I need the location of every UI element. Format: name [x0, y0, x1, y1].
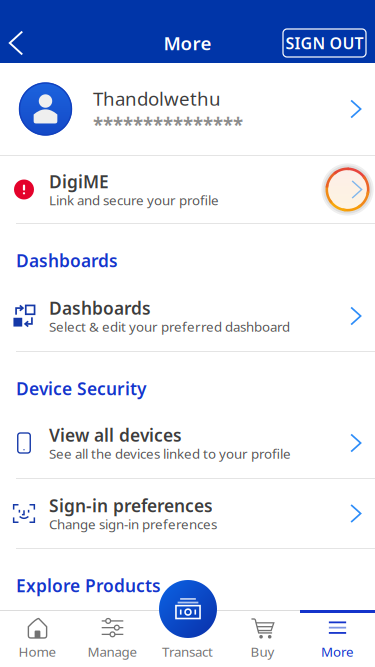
staticText: Transact	[162, 643, 213, 660]
staticText: View all devices	[49, 424, 182, 447]
button[interactable]: Back	[0, 24, 32, 62]
staticText: ***************	[93, 112, 243, 137]
staticText: Sign-in preferences	[49, 494, 213, 517]
staticText: Select & edit your preferred dashboard	[49, 318, 290, 335]
staticText: See all the devices linked to your profi…	[49, 445, 291, 462]
staticText: More	[163, 31, 211, 55]
button[interactable]: View all devices	[0, 408, 375, 478]
staticText: More	[321, 643, 354, 660]
staticText: Manage	[87, 643, 137, 660]
button[interactable]: Sign-in preferences	[0, 479, 375, 548]
staticText: Thandolwethu	[93, 86, 221, 111]
staticText: DigiME	[49, 170, 109, 193]
staticText: Explore Products	[16, 574, 161, 597]
staticText: Buy	[250, 643, 274, 660]
button[interactable]: More	[300, 610, 375, 667]
staticText: Device Security	[16, 377, 146, 400]
button[interactable]: Thandolwethu	[0, 63, 375, 155]
staticText: SIGN OUT	[285, 32, 363, 54]
button[interactable]: Transact	[159, 580, 217, 638]
staticText: Home	[18, 643, 56, 660]
button[interactable]: Transact	[150, 610, 225, 667]
button[interactable]: Dashboards	[0, 281, 375, 351]
staticText: Dashboards	[49, 297, 151, 320]
staticText: Link and secure your profile	[49, 191, 219, 209]
button[interactable]: Manage	[75, 610, 150, 667]
staticText: Change sign-in preferences	[49, 515, 217, 533]
button[interactable]: Buy	[225, 610, 300, 667]
staticText: Dashboards	[16, 249, 118, 272]
button[interactable]: SIGN OUT	[283, 29, 366, 57]
button[interactable]: DigiME	[0, 156, 375, 223]
button[interactable]: Home	[0, 610, 75, 667]
